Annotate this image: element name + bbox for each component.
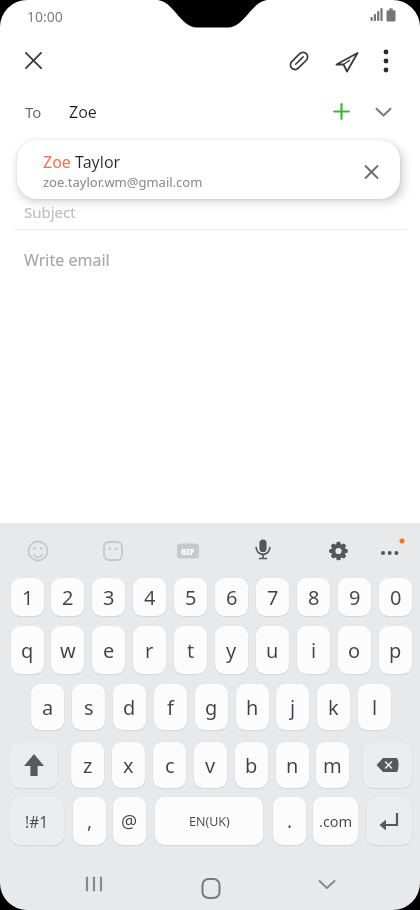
button[interactable]: 6 [215,578,248,616]
staticText: g [205,694,218,721]
button[interactable]: .com [313,797,358,845]
staticText: f [167,694,174,721]
staticText: 7 [267,584,279,611]
button[interactable]: u [256,626,289,674]
staticText: z [83,752,93,779]
button[interactable]: 0 [379,578,412,616]
button[interactable] [282,45,315,78]
staticText: GIF [181,546,195,557]
staticText: c [165,752,175,779]
staticText: l [372,694,378,721]
button[interactable]: !#1 [10,797,64,845]
staticText: Zoe Taylor [43,151,121,173]
button[interactable]: l [358,684,391,730]
staticText: zoe.taylor.wm@gmail.com [43,173,203,191]
button[interactable] [10,742,58,788]
staticText: 6 [226,584,238,611]
button[interactable]: i [297,626,330,674]
staticText: m [323,752,342,779]
staticText: b [245,752,258,779]
button[interactable]: j [276,684,309,730]
staticText: 2 [62,584,74,611]
staticText: 0 [390,584,402,611]
button[interactable]: z [71,742,104,788]
button[interactable] [363,742,412,788]
button[interactable]: v [194,742,227,788]
button[interactable]: b [235,742,268,788]
button[interactable] [191,864,231,904]
button[interactable]: . [273,797,306,845]
button[interactable]: 4 [133,578,166,616]
staticText: x [123,752,134,779]
staticText: 4 [144,584,156,611]
button[interactable] [0,92,420,132]
button[interactable]: t [174,626,207,674]
button[interactable]: w [51,626,84,674]
staticText: 8 [308,584,320,611]
button[interactable]: 2 [51,578,84,616]
button[interactable]: m [316,742,349,788]
button[interactable]: n [276,742,309,788]
button[interactable]: @ [113,797,146,845]
staticText: i [311,637,317,664]
button[interactable] [368,96,399,127]
button[interactable] [74,864,114,904]
button[interactable]: x [112,742,145,788]
staticText: Subject [24,202,76,222]
button[interactable]: g [195,684,228,730]
staticText: @ [121,809,138,834]
button[interactable]: Zoe Taylor [17,140,400,199]
button[interactable]: 9 [338,578,371,616]
button[interactable]: r [133,626,166,674]
staticText: u [266,637,279,664]
staticText: q [21,637,34,664]
button[interactable]: 1 [11,578,44,616]
button[interactable]: h [236,684,269,730]
button[interactable] [307,864,347,904]
button[interactable]: 5 [174,578,207,616]
button[interactable]: 3 [92,578,125,616]
button[interactable]: y [215,626,248,674]
staticText: h [246,694,259,721]
button[interactable]: f [154,684,187,730]
staticText: . [287,808,293,834]
staticText: y [226,637,237,664]
button[interactable]: e [92,626,125,674]
button[interactable]: c [153,742,186,788]
staticText: !#1 [25,811,49,832]
button[interactable] [372,44,400,77]
staticText: e [103,637,115,664]
button[interactable] [366,797,412,845]
button[interactable] [355,155,385,185]
staticText: d [123,694,136,721]
staticText: EN(UK) [189,813,230,830]
staticText: j [290,694,296,721]
button[interactable]: 8 [297,578,330,616]
button[interactable]: p [379,626,412,674]
button[interactable]: o [338,626,371,674]
staticText: p [389,637,402,664]
button[interactable]: q [11,626,44,674]
staticText: r [145,637,154,664]
staticText: Zoe [69,101,97,123]
staticText: o [348,637,361,664]
button[interactable] [17,44,50,77]
button[interactable]: k [317,684,350,730]
staticText: v [205,752,216,779]
button[interactable] [326,96,357,127]
button[interactable]: 7 [256,578,289,616]
staticText: 3 [103,584,115,611]
staticText: 10:00 [27,7,63,26]
staticText: k [328,694,339,721]
staticText: To [25,102,42,122]
button[interactable]: , [73,797,106,845]
button[interactable]: d [113,684,146,730]
staticText: a [42,694,54,721]
button[interactable]: a [31,684,64,730]
button[interactable]: EN(UK) [155,797,263,845]
staticText: , [87,808,93,834]
button[interactable] [330,45,363,78]
staticText: Write email [24,249,110,271]
button[interactable]: s [72,684,105,730]
staticText: 5 [185,584,197,611]
